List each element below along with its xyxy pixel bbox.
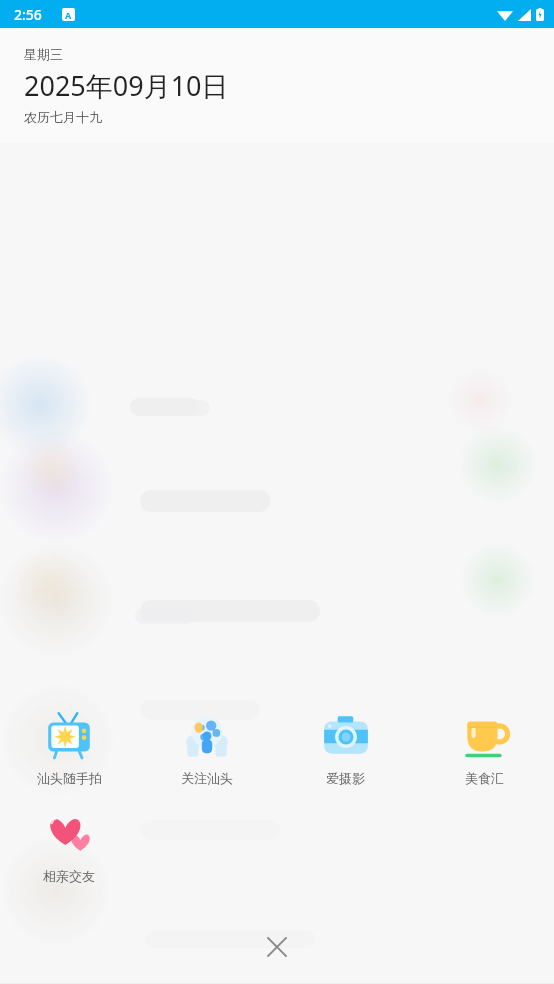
staticText: 汕头随手拍	[37, 770, 102, 786]
button[interactable]: 爱摄影	[276, 704, 415, 792]
button[interactable]: 关注汕头	[138, 704, 276, 792]
staticText: 2025年09月10日	[24, 67, 229, 104]
staticText: 相亲交友	[43, 868, 95, 884]
button[interactable]: 美食汇	[415, 704, 554, 792]
staticText: 爱摄影	[326, 770, 365, 786]
staticText: 美食汇	[465, 770, 504, 786]
staticText: 关注汕头	[181, 770, 233, 786]
staticText: 星期三	[24, 46, 63, 62]
staticText: A	[65, 9, 72, 21]
staticText: 农历七月十九	[24, 109, 102, 125]
button[interactable]: Close	[249, 919, 305, 975]
staticText: 2:56	[14, 5, 42, 24]
button[interactable]: 汕头随手拍	[0, 704, 138, 792]
button[interactable]: 相亲交友	[0, 802, 138, 890]
